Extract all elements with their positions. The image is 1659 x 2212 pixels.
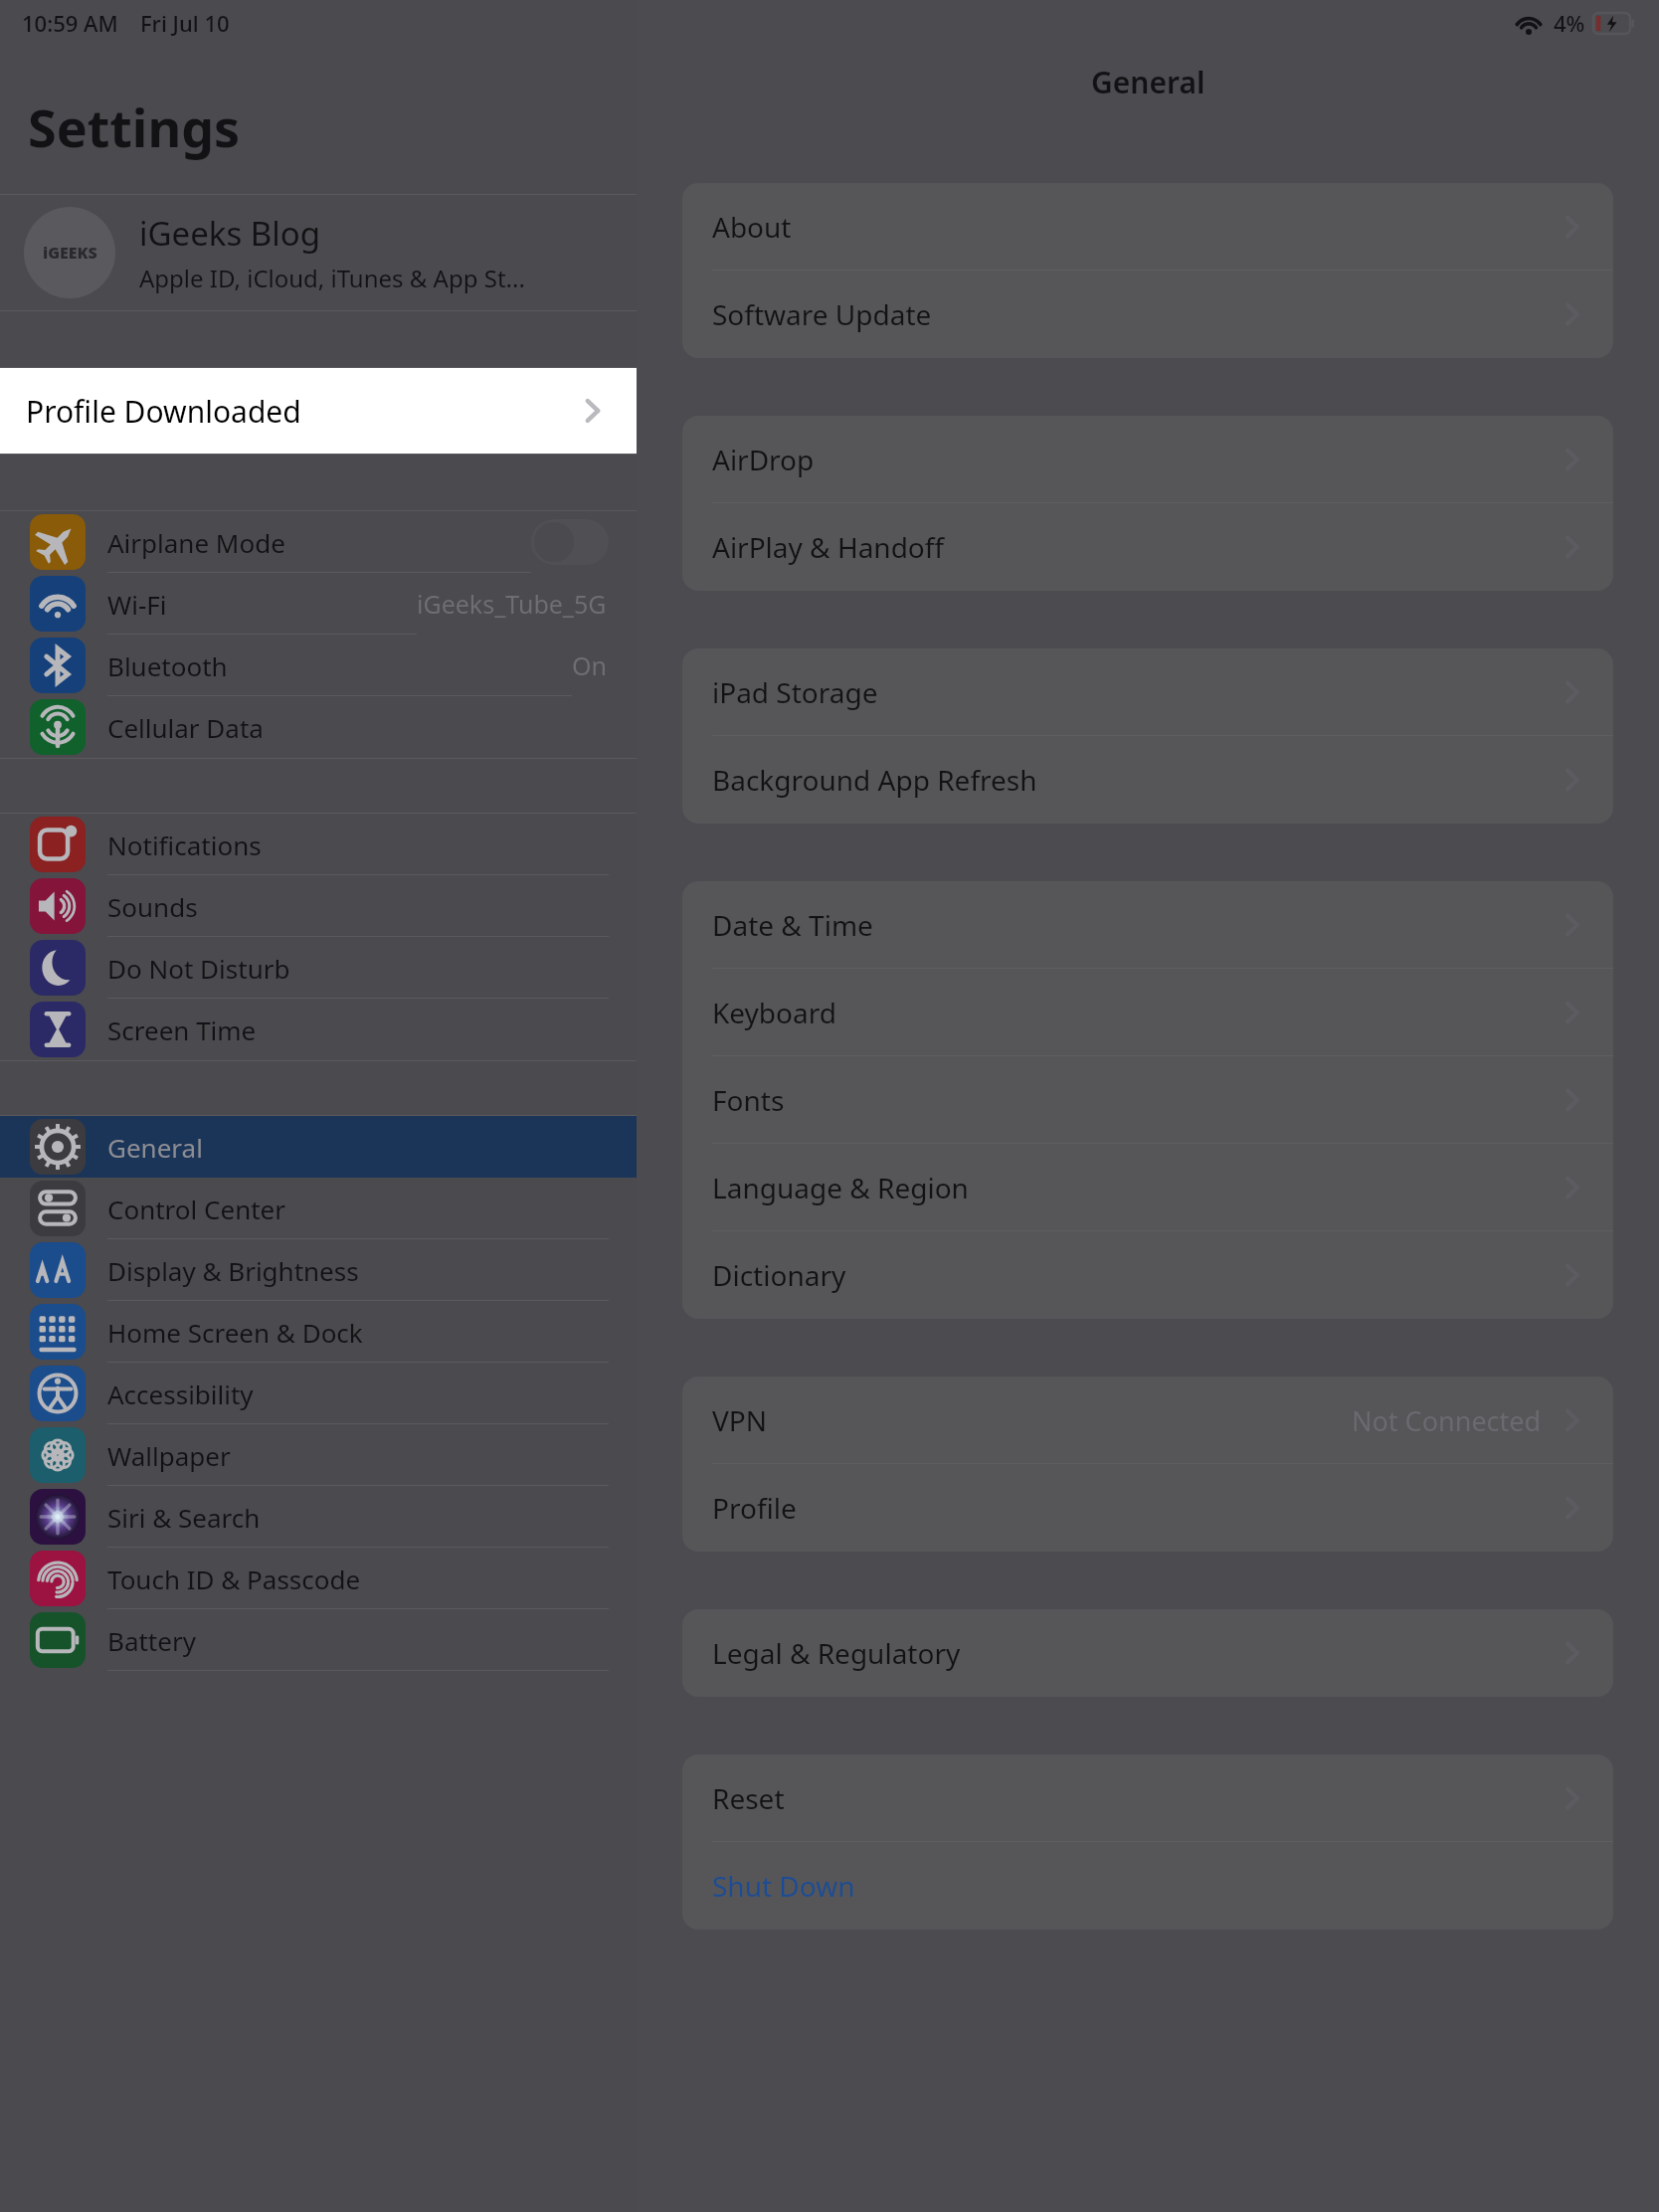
staticText: Settings xyxy=(28,92,241,162)
staticText: VPN xyxy=(712,1401,1352,1439)
staticText: AirPlay & Handoff xyxy=(712,528,1558,566)
staticText: Bluetooth xyxy=(107,648,228,683)
button[interactable]: Touch ID & Passcode xyxy=(0,1548,637,1609)
staticText: Legal & Regulatory xyxy=(712,1634,1558,1672)
button[interactable]: Keyboard xyxy=(682,969,1613,1056)
button[interactable]: Battery xyxy=(0,1609,637,1671)
staticText: Reset xyxy=(712,1779,1558,1817)
button[interactable]: iGEEKS xyxy=(0,195,637,310)
button[interactable]: About xyxy=(682,183,1613,271)
button[interactable]: Display & Brightness xyxy=(0,1239,637,1301)
button[interactable]: Dictionary xyxy=(682,1231,1613,1319)
staticText: Background App Refresh xyxy=(712,761,1558,799)
button[interactable]: Sounds xyxy=(0,875,637,937)
staticText: Touch ID & Passcode xyxy=(107,1562,361,1596)
button[interactable]: AirPlay & Handoff xyxy=(682,503,1613,591)
staticText: Cellular Data xyxy=(107,710,264,745)
staticText: iGeeks Blog xyxy=(139,211,320,256)
button[interactable]: Background App Refresh xyxy=(682,736,1613,824)
button[interactable]: Language & Region xyxy=(682,1144,1613,1231)
staticText: Not Connected xyxy=(1352,1402,1542,1439)
staticText: 10:59 AM xyxy=(22,8,118,38)
staticText: Dictionary xyxy=(712,1256,1558,1294)
staticText: iGeeks_Tube_5G xyxy=(417,587,607,621)
staticText: 4% xyxy=(1554,8,1585,38)
staticText: Accessibility xyxy=(107,1377,254,1411)
staticText: Keyboard xyxy=(712,994,1558,1031)
staticText: Screen Time xyxy=(107,1013,257,1047)
button[interactable]: Date & Time xyxy=(682,881,1613,969)
button[interactable]: Do Not Disturb xyxy=(0,937,637,999)
staticText: Home Screen & Dock xyxy=(107,1315,363,1350)
staticText: Wallpaper xyxy=(107,1438,231,1473)
staticText: Wi-Fi xyxy=(107,587,167,622)
staticText: About xyxy=(712,208,1558,246)
staticText: Profile Downloaded xyxy=(26,391,577,432)
staticText: Apple ID, iCloud, iTunes & App St... xyxy=(139,262,525,294)
staticText: Profile xyxy=(712,1489,1558,1527)
button[interactable]: General xyxy=(0,1116,637,1178)
staticText: Language & Region xyxy=(712,1169,1558,1206)
staticText: Do Not Disturb xyxy=(107,951,290,986)
staticText: Sounds xyxy=(107,889,198,924)
button[interactable]: Control Center xyxy=(0,1178,637,1239)
staticText: General xyxy=(107,1130,203,1165)
staticText: Software Update xyxy=(712,295,1558,333)
button[interactable]: Fonts xyxy=(682,1056,1613,1144)
staticText: Fonts xyxy=(712,1081,1558,1119)
button[interactable]: Legal & Regulatory xyxy=(682,1609,1613,1697)
button[interactable]: Notifications xyxy=(0,814,637,875)
staticText: iGEEKS xyxy=(43,242,97,264)
button[interactable]: Siri & Search xyxy=(0,1486,637,1548)
staticText: On xyxy=(572,648,607,682)
staticText: Siri & Search xyxy=(107,1500,261,1535)
staticText: Airplane Mode xyxy=(107,525,285,560)
staticText: Display & Brightness xyxy=(107,1253,359,1288)
staticText: AirDrop xyxy=(712,441,1558,478)
button[interactable]: Home Screen & Dock xyxy=(0,1301,637,1363)
button[interactable]: Wi-Fi xyxy=(0,573,637,635)
staticText: Shut Down xyxy=(712,1867,1587,1905)
staticText: Fri Jul 10 xyxy=(140,8,230,38)
button[interactable]: Profile xyxy=(682,1464,1613,1552)
staticText: Notifications xyxy=(107,828,262,862)
staticText: General xyxy=(1091,62,1205,102)
button[interactable]: VPN xyxy=(682,1377,1613,1464)
staticText: Control Center xyxy=(107,1192,285,1226)
button[interactable]: Cellular Data xyxy=(0,696,637,758)
button[interactable]: iPad Storage xyxy=(682,648,1613,736)
staticText: iPad Storage xyxy=(712,673,1558,711)
button[interactable]: Reset xyxy=(682,1754,1613,1842)
button[interactable]: Screen Time xyxy=(0,999,637,1060)
staticText: Battery xyxy=(107,1623,196,1658)
button[interactable]: Wallpaper xyxy=(0,1424,637,1486)
button[interactable]: Profile Downloaded xyxy=(0,368,637,454)
button[interactable]: Bluetooth xyxy=(0,635,637,696)
button[interactable]: AirDrop xyxy=(682,416,1613,503)
staticText: Date & Time xyxy=(712,906,1558,944)
button[interactable]: Airplane Mode xyxy=(0,511,637,573)
button[interactable]: Shut Down xyxy=(682,1842,1613,1930)
button[interactable]: Software Update xyxy=(682,271,1613,358)
button[interactable]: Accessibility xyxy=(0,1363,637,1424)
